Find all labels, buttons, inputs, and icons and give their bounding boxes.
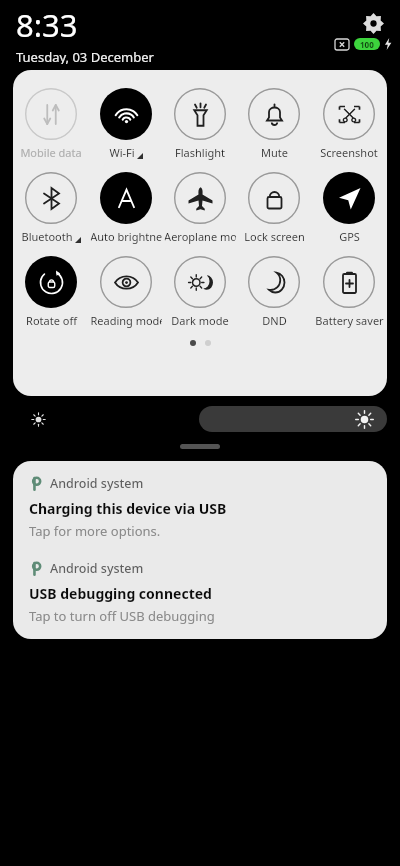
button[interactable]: Dark mode xyxy=(164,254,236,330)
button[interactable]: Brightness slider xyxy=(199,406,387,432)
button[interactable]: Android system xyxy=(13,461,387,546)
staticText: Android system xyxy=(50,560,144,577)
button[interactable]: Screenshot xyxy=(313,86,385,162)
button[interactable]: Flashlight xyxy=(164,86,236,162)
staticText: Tap for more options. xyxy=(29,522,161,540)
button[interactable]: Android system xyxy=(13,546,387,631)
staticText: 100 xyxy=(360,39,374,50)
button[interactable]: Rotate off xyxy=(15,254,87,330)
staticText: Flashlight xyxy=(175,145,225,160)
staticText: Tap to turn off USB debugging xyxy=(29,607,215,625)
staticText: Android system xyxy=(50,475,144,492)
button[interactable]: Aeroplane mode xyxy=(164,170,236,246)
staticText: USB debugging connected xyxy=(29,584,212,603)
staticText: Bluetooth xyxy=(21,229,73,244)
button[interactable]: Mobile data xyxy=(15,86,87,162)
button[interactable]: GPS xyxy=(313,170,385,246)
staticText: Mobile data xyxy=(20,145,82,160)
staticText: Screenshot xyxy=(320,145,378,160)
staticText: Tuesday, 03 December xyxy=(16,48,154,64)
button[interactable]: Settings xyxy=(356,6,390,40)
button[interactable]: Brightness low xyxy=(26,407,50,431)
staticText: DND xyxy=(262,313,287,328)
staticText: Reading mode xyxy=(90,313,162,328)
button[interactable]: Mute xyxy=(238,86,310,162)
button[interactable]: Auto brightness xyxy=(90,170,162,246)
staticText: 8:33 xyxy=(16,4,78,46)
button[interactable]: Bluetooth xyxy=(15,170,87,246)
staticText: Rotate off xyxy=(26,313,77,328)
staticText: GPS xyxy=(339,229,360,244)
button[interactable]: DND xyxy=(238,254,310,330)
staticText: Aeroplane mode xyxy=(164,229,236,244)
staticText: Auto brightness xyxy=(90,229,162,244)
staticText: Wi-Fi xyxy=(109,145,135,160)
button[interactable]: Reading mode xyxy=(90,254,162,330)
staticText: Lock screen xyxy=(244,229,305,244)
staticText: Dark mode xyxy=(171,313,229,328)
staticText: Charging this device via USB xyxy=(29,499,227,518)
staticText: Battery saver xyxy=(315,313,384,328)
staticText: Mute xyxy=(261,145,288,160)
button[interactable]: Battery saver xyxy=(313,254,385,330)
button[interactable]: Wi-Fi xyxy=(90,86,162,162)
button[interactable]: Lock screen xyxy=(238,170,310,246)
